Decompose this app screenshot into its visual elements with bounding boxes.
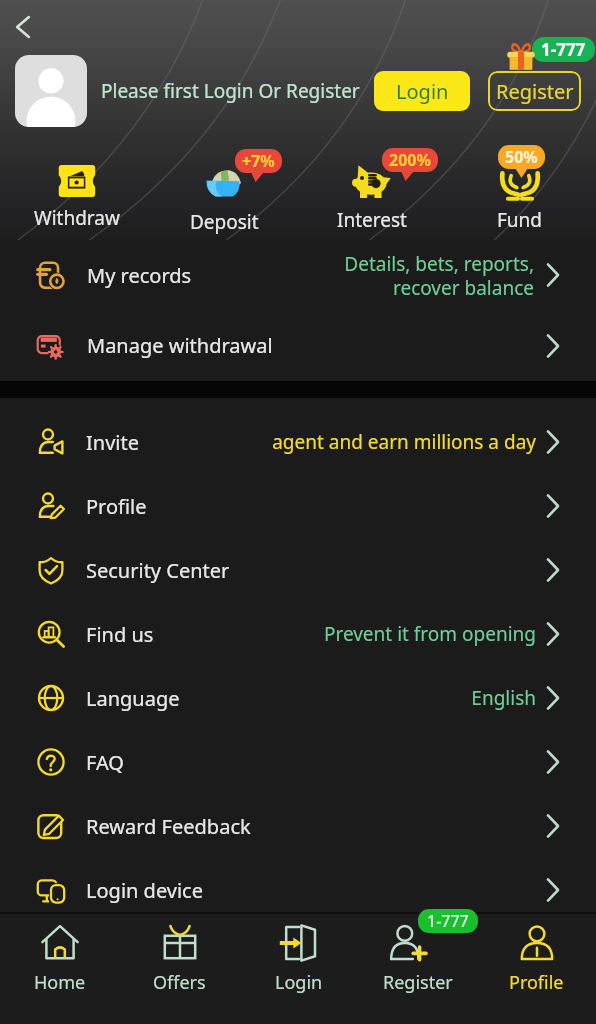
staticText: Register xyxy=(496,78,574,105)
button[interactable]: Profile xyxy=(0,474,596,538)
staticText: Login device xyxy=(86,877,203,904)
staticText: Deposit xyxy=(190,209,259,235)
button[interactable]: FAQ xyxy=(0,730,596,794)
button[interactable]: +7% xyxy=(154,162,295,235)
staticText: Details, bets, reports, recover balance xyxy=(344,251,534,300)
staticText: 1-777 xyxy=(427,910,469,932)
staticText: Login xyxy=(275,970,323,995)
staticText: 1-777 xyxy=(541,38,586,61)
button[interactable]: Security Center xyxy=(0,538,596,602)
staticText: Withdraw xyxy=(34,205,120,231)
button[interactable]: Reward Feedback xyxy=(0,794,596,858)
staticText: Reward Feedback xyxy=(86,813,251,840)
button[interactable]: My records xyxy=(0,240,596,310)
button[interactable]: Language xyxy=(0,666,596,730)
staticText: Profile xyxy=(509,970,564,995)
button[interactable]: 200% xyxy=(301,162,442,233)
staticText: Prevent it from opening xyxy=(323,621,536,647)
button[interactable]: 50% xyxy=(449,162,590,233)
staticText: Fund xyxy=(497,207,543,233)
staticText: English xyxy=(471,685,536,711)
button[interactable]: Find us xyxy=(0,602,596,666)
staticText: agent and earn millions a day xyxy=(272,429,536,455)
staticText: Security Center xyxy=(86,557,230,584)
staticText: 50% xyxy=(505,146,538,168)
staticText: FAQ xyxy=(86,749,124,776)
staticText: My records xyxy=(87,262,192,289)
staticText: Register xyxy=(383,970,453,995)
staticText: 200% xyxy=(389,149,431,171)
button[interactable]: Login xyxy=(239,933,358,1005)
staticText: Find us xyxy=(86,621,154,648)
button[interactable]: Login xyxy=(374,71,470,111)
staticText: Invite xyxy=(86,429,139,456)
staticText: Profile xyxy=(86,493,147,520)
button[interactable]: Offers xyxy=(120,933,239,1005)
staticText: Home xyxy=(34,970,86,995)
staticText: Manage withdrawal xyxy=(87,332,273,359)
button[interactable]: Manage withdrawal xyxy=(0,310,596,381)
staticText: Please first Login Or Register xyxy=(101,78,360,104)
button[interactable]: Avatar xyxy=(15,55,87,127)
staticText: +7% xyxy=(242,150,275,172)
button[interactable]: Login device xyxy=(0,858,596,922)
staticText: Language xyxy=(86,685,180,712)
button[interactable]: Register xyxy=(488,71,581,111)
button[interactable]: Withdraw xyxy=(6,162,147,231)
button[interactable]: Home xyxy=(0,933,120,1005)
button[interactable]: Invite xyxy=(0,410,596,474)
button[interactable]: Profile xyxy=(477,933,596,1005)
button[interactable]: Back xyxy=(0,4,46,50)
staticText: Offers xyxy=(153,970,206,995)
staticText: Login xyxy=(396,78,449,105)
staticText: Interest xyxy=(337,207,407,233)
button[interactable]: 1-777 xyxy=(358,933,477,1005)
